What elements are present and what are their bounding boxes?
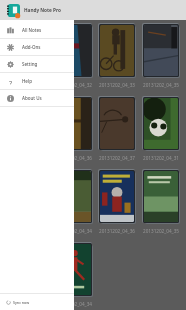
button[interactable] <box>55 23 92 77</box>
staticText: ? <box>9 78 13 85</box>
staticText: 20131202_04_37 <box>95 155 139 161</box>
button[interactable] <box>55 242 92 296</box>
staticText: Add-Ons <box>22 44 41 50</box>
button[interactable] <box>98 23 135 77</box>
button[interactable] <box>142 23 179 77</box>
button[interactable] <box>55 169 92 223</box>
staticText: 20131202_04_34 <box>52 228 96 234</box>
button[interactable] <box>98 96 135 150</box>
button[interactable]: ? <box>0 73 74 89</box>
staticText: 20131202_04_31 <box>139 155 183 161</box>
button[interactable] <box>98 169 135 223</box>
staticText: Handy Note Pro <box>24 7 61 13</box>
button[interactable]: Handy Note Pro <box>0 0 74 20</box>
button[interactable]: About Us <box>0 90 74 106</box>
button[interactable] <box>142 169 179 223</box>
staticText: Sync now <box>13 300 30 305</box>
button[interactable] <box>142 96 179 150</box>
staticText: 20131202_04_34 <box>52 301 96 307</box>
staticText: About Us <box>22 95 42 101</box>
staticText: 20131202_04_33 <box>95 82 139 88</box>
staticText: 20131202_04_36 <box>95 228 139 234</box>
staticText: 20131202_04_36 <box>52 155 96 161</box>
button[interactable]: Sync now <box>0 294 74 310</box>
staticText: 20131202_04_35 <box>139 82 183 88</box>
button[interactable] <box>55 96 92 150</box>
staticText: All Notes <box>22 27 42 33</box>
button[interactable]: Setting <box>0 56 74 72</box>
button[interactable]: Add-Ons <box>0 39 74 55</box>
staticText: Setting <box>22 61 38 67</box>
staticText: 20131202_04_32 <box>52 82 96 88</box>
staticText: 20131202_04_35 <box>139 228 183 234</box>
button[interactable]: All Notes <box>0 22 74 38</box>
staticText: Help <box>22 78 32 84</box>
